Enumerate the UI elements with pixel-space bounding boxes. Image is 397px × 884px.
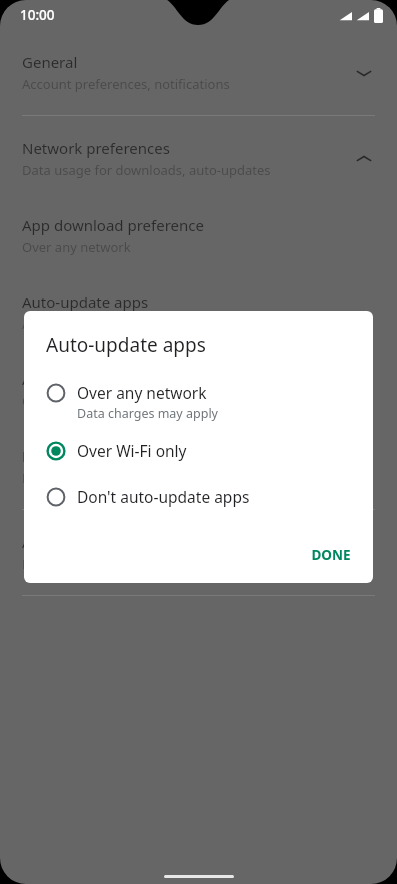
staticText: Over Wi-Fi only — [77, 440, 187, 461]
button[interactable]: Download apps via Wi-Fi — [0, 434, 397, 499]
button[interactable]: App download preference — [0, 203, 397, 268]
staticText: Download apps via Wi-Fi — [22, 446, 194, 466]
staticText: Account preferences, notifications — [22, 75, 230, 93]
button[interactable]: Over Wi-Fi only — [24, 434, 373, 467]
button[interactable]: Auto-update apps — [0, 280, 397, 345]
staticText: Over any network — [77, 382, 207, 403]
button[interactable]: General — [0, 40, 397, 105]
other: Collapse — [349, 144, 379, 174]
button[interactable]: DONE — [299, 537, 363, 573]
staticText: App download preference — [22, 215, 204, 235]
staticText: 10:00 — [20, 6, 55, 24]
staticText: Auto-play videos — [22, 369, 139, 389]
other: Expand — [349, 58, 379, 88]
staticText: DONE — [311, 546, 351, 564]
button[interactable]: Don't auto-update apps — [24, 480, 373, 513]
button[interactable]: Auto-play videos — [0, 357, 397, 422]
staticText: Over any network — [22, 238, 131, 256]
other: Expand — [349, 538, 379, 568]
staticText: Data charges may apply — [77, 405, 218, 422]
staticText: General — [22, 52, 78, 72]
button[interactable]: Over any network — [24, 376, 373, 428]
staticText: Auto-update apps over Wi-Fi only — [22, 315, 224, 333]
staticText: Auto-update apps — [46, 332, 206, 358]
staticText: Auto-update apps — [22, 292, 149, 312]
staticText: Network preferences — [22, 138, 170, 158]
staticText: Over Wi-Fi only — [22, 392, 114, 410]
staticText: Data usage for downloads, auto-updates — [22, 161, 271, 179]
button[interactable]: Network preferences — [0, 126, 397, 191]
staticText: Don't auto-update apps — [77, 486, 250, 507]
staticText: About — [22, 532, 65, 552]
staticText: Never — [22, 469, 59, 487]
staticText: Play Store, build version, device certif… — [22, 555, 290, 573]
button[interactable]: About — [0, 520, 397, 585]
